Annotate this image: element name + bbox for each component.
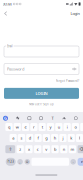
staticText: r — [33, 124, 35, 130]
staticText: l — [79, 135, 80, 141]
staticText: Email — [7, 44, 13, 48]
staticText: ☺ — [26, 160, 29, 163]
staticText: ⇧ — [9, 147, 12, 151]
staticText: G — [4, 116, 7, 121]
staticText: . — [73, 160, 74, 163]
staticText: a — [12, 135, 14, 141]
staticText: m — [70, 146, 74, 152]
staticText: t — [42, 124, 43, 130]
button[interactable]: New user? Sign up — [4, 102, 79, 106]
staticText: T — [52, 116, 54, 121]
staticText: y — [49, 124, 51, 130]
staticText: o — [74, 124, 76, 130]
staticText: Login — [70, 11, 79, 16]
staticText: Password — [7, 66, 24, 72]
staticText: s — [20, 135, 22, 141]
button[interactable]: LOGIN — [4, 88, 79, 99]
button[interactable]: Forgot Password? — [56, 79, 79, 83]
staticText: q — [8, 124, 10, 130]
staticText: LOGIN — [35, 91, 47, 96]
staticText: i — [67, 124, 68, 130]
staticText: n — [63, 146, 65, 152]
staticText: u — [58, 124, 60, 130]
staticText: Forgot Password? — [56, 79, 79, 83]
staticText: w — [16, 124, 19, 130]
staticText: , — [20, 160, 21, 163]
staticText: j — [62, 135, 63, 141]
staticText: h — [54, 135, 56, 141]
staticText: g — [45, 135, 47, 141]
staticText: x — [28, 146, 30, 152]
staticText: b — [54, 146, 56, 152]
staticText: k — [70, 135, 72, 141]
staticText: ↵ — [80, 159, 83, 164]
staticText: e — [25, 124, 27, 130]
staticText: ⌫ — [79, 147, 83, 151]
staticText: d — [29, 135, 31, 141]
staticText: New user? Sign up — [29, 102, 54, 106]
staticText: ?123 — [7, 160, 14, 163]
staticText: 00:44 — [2, 1, 11, 7]
staticText: v — [45, 146, 47, 152]
staticText: z — [19, 146, 21, 152]
button[interactable]: Back — [1, 9, 10, 18]
staticText: c — [37, 146, 39, 152]
